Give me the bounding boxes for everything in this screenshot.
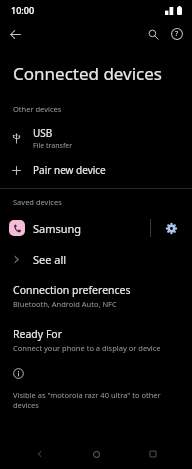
button[interactable]: Help: [166, 23, 188, 45]
button[interactable]: Pair new device: [0, 161, 192, 179]
staticText: Samsung: [33, 221, 82, 236]
staticText: Connect your phone to a display or devic…: [13, 343, 161, 353]
staticText: Ready For: [13, 327, 63, 341]
staticText: Bluetooth, Android Auto, NFC: [13, 299, 117, 309]
button[interactable]: Home: [79, 441, 113, 467]
button[interactable]: USB: [0, 124, 192, 153]
button[interactable]: Ready For: [0, 326, 192, 354]
button[interactable]: Recent apps: [136, 441, 170, 467]
button[interactable]: Back: [5, 24, 25, 44]
staticText: USB: [33, 126, 53, 140]
button[interactable]: Connection preferences: [0, 282, 192, 310]
staticText: Connected devices: [13, 62, 163, 85]
staticText: File transfer: [33, 141, 73, 151]
button[interactable]: Device settings: [151, 214, 192, 242]
staticText: See all: [33, 252, 67, 267]
staticText: Saved devices: [13, 197, 62, 207]
button[interactable]: Samsung: [0, 220, 150, 236]
button[interactable]: Search: [142, 23, 164, 45]
staticText: 10:00: [11, 4, 35, 16]
staticText: ?: [175, 29, 179, 39]
staticText: Visible as "motorola razr 40 ultra" to o…: [13, 390, 184, 410]
button[interactable]: See all: [0, 248, 192, 270]
button[interactable]: Back: [23, 441, 57, 467]
staticText: Pair new device: [33, 163, 106, 177]
staticText: Connection preferences: [13, 283, 131, 297]
staticText: Other devices: [13, 104, 62, 114]
